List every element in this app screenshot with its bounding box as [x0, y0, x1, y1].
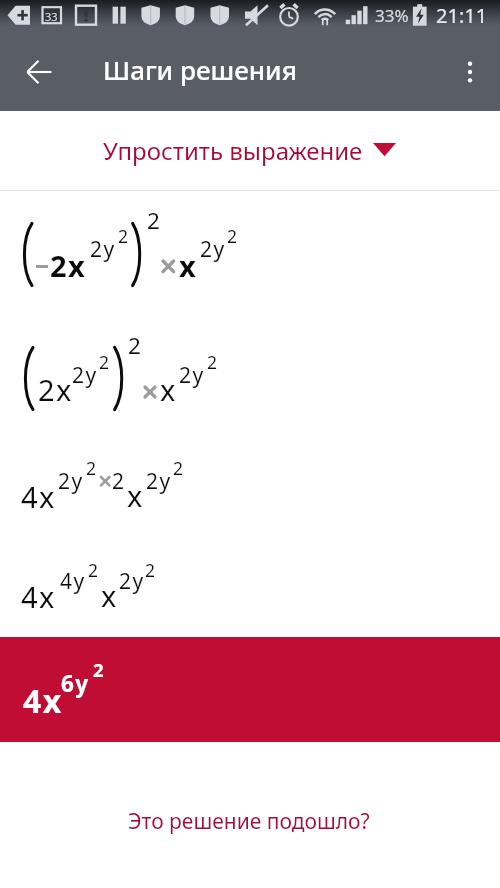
staticText: x	[127, 476, 143, 515]
staticText: 2	[207, 350, 218, 374]
staticText: 2	[147, 205, 160, 236]
staticText: 21:11	[436, 2, 488, 29]
staticText: 4x	[23, 679, 63, 723]
staticText: 4x	[21, 477, 56, 516]
staticText: 33%	[375, 4, 409, 27]
staticText: 2	[173, 456, 184, 480]
button[interactable]	[0, 421, 500, 521]
staticText: 4x	[21, 577, 56, 616]
button[interactable]	[0, 637, 500, 742]
staticText: 2x	[38, 370, 73, 409]
staticText: 33	[45, 9, 58, 24]
staticText: 2y	[200, 235, 226, 264]
staticText: 2y	[119, 567, 145, 596]
staticText: 2	[88, 558, 99, 582]
button[interactable]: Back	[15, 48, 63, 96]
staticText: x	[160, 370, 176, 409]
staticText: Шаги решения	[103, 52, 297, 87]
staticText: 2	[128, 330, 141, 361]
staticText: x	[101, 576, 117, 615]
staticText: 2y	[58, 467, 84, 496]
staticText: 2	[86, 456, 97, 480]
staticText: 2y	[146, 467, 172, 496]
staticText: 2	[93, 657, 104, 682]
staticText: 2	[99, 350, 110, 374]
button[interactable]	[0, 315, 500, 421]
staticText: 2	[112, 467, 125, 496]
button[interactable]	[0, 191, 500, 315]
staticText: Упростить выражение	[103, 134, 363, 167]
staticText: 4y	[60, 567, 86, 596]
staticText: 2x	[50, 246, 87, 285]
staticText: 2	[227, 224, 238, 248]
staticText: 2y	[90, 235, 116, 264]
staticText: x	[179, 246, 196, 285]
button[interactable]	[0, 521, 500, 637]
staticText: 2y	[72, 361, 98, 390]
button[interactable]: Упростить выражение	[0, 111, 500, 190]
button[interactable]: Это решение подошло?	[128, 807, 370, 836]
staticText: 2y	[179, 361, 205, 390]
staticText: 2	[145, 558, 156, 582]
staticText: 2	[118, 224, 129, 248]
button[interactable]: More options	[446, 48, 494, 96]
staticText: 6y	[61, 668, 90, 699]
